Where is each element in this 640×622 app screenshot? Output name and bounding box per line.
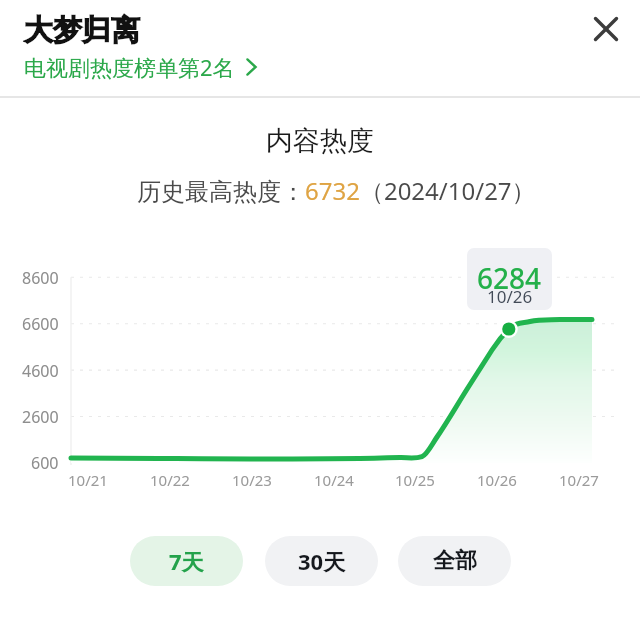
staticText: 600 — [31, 452, 59, 474]
staticText: 10/27 — [559, 470, 599, 490]
staticText: 10/23 — [232, 470, 272, 490]
staticText: 历史最高热度：6732（2024/10/27） — [137, 174, 536, 207]
staticText: 8600 — [22, 267, 59, 289]
staticText: 10/25 — [395, 470, 435, 490]
staticText: 10/22 — [150, 470, 190, 490]
staticText: 内容热度 — [266, 124, 374, 158]
button[interactable]: 电视剧热度榜单第2名 — [24, 52, 257, 82]
staticText: 10/21 — [68, 470, 108, 490]
button[interactable]: 大梦归离 — [24, 12, 140, 49]
staticText: 2600 — [22, 406, 59, 428]
button[interactable]: 7天 — [130, 536, 243, 586]
staticText: 10/26 — [487, 285, 533, 308]
staticText: 电视剧热度榜单第2名 — [24, 52, 235, 82]
button[interactable]: Close — [588, 11, 624, 47]
staticText: 大梦归离 — [24, 12, 140, 49]
button[interactable]: 30天 — [265, 536, 378, 586]
staticText: 10/26 — [477, 470, 517, 490]
staticText: 6600 — [22, 313, 59, 335]
button[interactable]: 全部 — [398, 536, 511, 586]
staticText: 10/24 — [314, 470, 354, 490]
staticText: 30天 — [298, 546, 346, 576]
staticText: 4600 — [22, 360, 59, 382]
staticText: 全部 — [433, 547, 477, 575]
staticText: 6284 — [477, 259, 542, 297]
staticText: 7天 — [169, 546, 204, 576]
